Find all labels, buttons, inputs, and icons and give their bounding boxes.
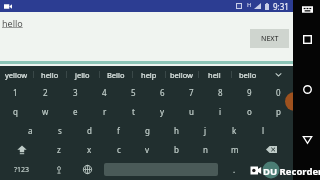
button[interactable]: w bbox=[30, 102, 60, 121]
button[interactable]: g bbox=[133, 121, 162, 140]
staticText: a bbox=[28, 125, 33, 136]
staticText: m bbox=[231, 144, 239, 155]
button[interactable]: bello bbox=[231, 66, 264, 83]
button[interactable]: e bbox=[60, 102, 90, 121]
button[interactable]: z bbox=[44, 140, 74, 159]
staticText: s bbox=[58, 125, 62, 136]
button[interactable]: yellow bbox=[0, 66, 33, 83]
button[interactable]: Change keyboard language bbox=[73, 159, 102, 180]
button[interactable]: b bbox=[162, 140, 191, 159]
button[interactable]: More suggestions bbox=[264, 66, 293, 83]
button[interactable]: c bbox=[104, 140, 133, 159]
button[interactable]: help bbox=[132, 66, 165, 83]
button[interactable]: Home bbox=[303, 85, 312, 94]
button[interactable]: Bello bbox=[99, 66, 132, 83]
button[interactable]: 2 bbox=[30, 83, 60, 102]
staticText: yellow bbox=[5, 70, 28, 80]
button[interactable]: 1 bbox=[0, 83, 30, 102]
staticText: r bbox=[103, 106, 107, 117]
button[interactable]: 8 bbox=[206, 83, 235, 102]
button[interactable]: k bbox=[220, 121, 249, 140]
staticText: w bbox=[42, 106, 49, 117]
staticText: e bbox=[73, 106, 78, 117]
button[interactable]: i bbox=[206, 102, 235, 121]
button[interactable]: . bbox=[220, 159, 249, 180]
staticText: NEXT bbox=[261, 34, 279, 44]
button[interactable]: Backspace bbox=[249, 140, 293, 159]
staticText: v bbox=[145, 144, 150, 155]
staticText: 9:31 bbox=[273, 1, 289, 12]
staticText: 4 bbox=[102, 87, 107, 98]
button[interactable]: r bbox=[90, 102, 119, 121]
staticText: hello bbox=[2, 17, 23, 29]
button[interactable]: 5 bbox=[119, 83, 148, 102]
staticText: 0 bbox=[276, 87, 281, 98]
staticText: i bbox=[219, 106, 222, 117]
staticText: n bbox=[203, 144, 208, 155]
button[interactable]: h bbox=[162, 121, 191, 140]
staticText: c bbox=[117, 144, 121, 155]
staticText: bello bbox=[239, 70, 257, 80]
button[interactable]: d bbox=[75, 121, 104, 140]
staticText: bellow bbox=[170, 70, 193, 80]
button[interactable]: j bbox=[191, 121, 220, 140]
staticText: DU Recorder bbox=[263, 165, 320, 178]
button[interactable]: Voice input bbox=[44, 159, 73, 180]
staticText: 3 bbox=[73, 87, 78, 98]
button[interactable]: o bbox=[235, 102, 264, 121]
button[interactable]: NEXT bbox=[250, 29, 289, 48]
staticText: x bbox=[87, 144, 92, 155]
staticText: 1 bbox=[13, 87, 18, 98]
staticText: 9 bbox=[247, 87, 252, 98]
button[interactable]: t bbox=[119, 102, 148, 121]
button[interactable]: 7 bbox=[177, 83, 206, 102]
button[interactable]: n bbox=[191, 140, 220, 159]
button[interactable]: Shift bbox=[0, 140, 44, 159]
button[interactable]: y bbox=[148, 102, 177, 121]
staticText: hell bbox=[208, 70, 221, 80]
staticText: o bbox=[247, 106, 252, 117]
button[interactable]: l bbox=[249, 121, 278, 140]
button[interactable]: bellow bbox=[165, 66, 198, 83]
button[interactable]: 3 bbox=[60, 83, 90, 102]
staticText: help bbox=[141, 70, 157, 80]
button[interactable]: 6 bbox=[148, 83, 177, 102]
button[interactable]: v bbox=[133, 140, 162, 159]
button[interactable]: f bbox=[104, 121, 133, 140]
button[interactable]: ?123 bbox=[0, 159, 44, 180]
staticText: h bbox=[174, 125, 179, 136]
button[interactable]: Back bbox=[303, 135, 312, 144]
button[interactable]: u bbox=[177, 102, 206, 121]
button[interactable]: Enter bbox=[249, 159, 293, 180]
button[interactable]: hello bbox=[33, 66, 66, 83]
staticText: ?123 bbox=[14, 165, 30, 175]
staticText: 8 bbox=[218, 87, 223, 98]
staticText: Bello bbox=[107, 70, 125, 80]
staticText: p bbox=[276, 106, 281, 117]
button[interactable]: Recent apps bbox=[303, 35, 312, 44]
button[interactable]: m bbox=[220, 140, 249, 159]
staticText: . bbox=[233, 164, 236, 175]
staticText: u bbox=[189, 106, 194, 117]
staticText: g bbox=[145, 125, 150, 136]
button[interactable]: x bbox=[74, 140, 104, 159]
button[interactable]: 4 bbox=[90, 83, 119, 102]
button[interactable]: a bbox=[15, 121, 45, 140]
button[interactable]: q bbox=[0, 102, 30, 121]
staticText: z bbox=[57, 144, 61, 155]
staticText: 6 bbox=[160, 87, 165, 98]
staticText: b bbox=[174, 144, 179, 155]
button[interactable]: Hide keyboard bbox=[302, 5, 313, 14]
staticText: f bbox=[117, 125, 120, 136]
button[interactable]: 0 bbox=[264, 83, 293, 102]
button[interactable]: 9 bbox=[235, 83, 264, 102]
staticText: k bbox=[232, 125, 237, 136]
button[interactable]: jello bbox=[66, 66, 99, 83]
button[interactable]: hell bbox=[198, 66, 231, 83]
staticText: jello bbox=[75, 70, 90, 80]
staticText: j bbox=[204, 125, 207, 136]
button[interactable]: s bbox=[45, 121, 75, 140]
staticText: hello bbox=[41, 70, 59, 80]
button[interactable]: p bbox=[264, 102, 293, 121]
